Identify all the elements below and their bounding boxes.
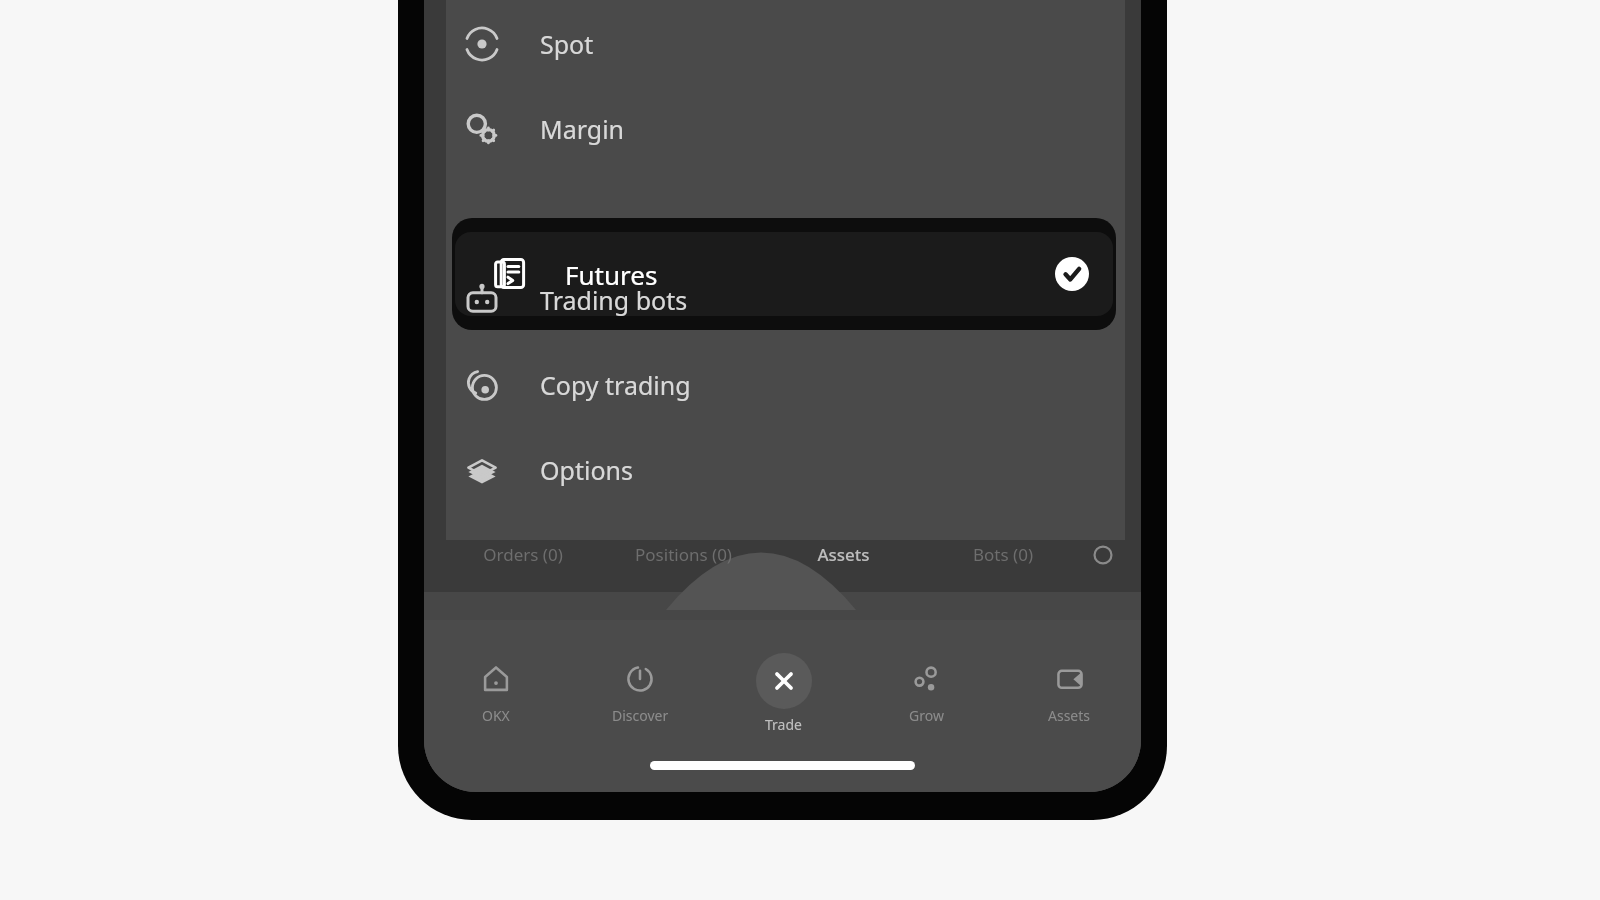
- staticText: OKX: [482, 706, 510, 725]
- staticText: Assets: [817, 543, 870, 566]
- staticText: Bots (0): [973, 543, 1033, 566]
- button[interactable]: Discover: [568, 638, 712, 748]
- staticText: Positions (0): [635, 543, 732, 566]
- button[interactable]: Close trade menu: [712, 638, 855, 748]
- staticText: Spot: [540, 27, 594, 61]
- staticText: Grow: [909, 706, 944, 725]
- staticText: Trading bots: [540, 283, 688, 317]
- button[interactable]: Copy trading: [424, 355, 1141, 415]
- staticText: Options: [540, 453, 633, 487]
- staticText: Discover: [612, 706, 669, 725]
- button[interactable]: Trading bots: [424, 270, 1141, 330]
- button[interactable]: Grow: [855, 638, 998, 748]
- staticText: Futures: [565, 257, 1055, 292]
- staticText: Margin: [540, 112, 625, 146]
- button[interactable]: Assets: [998, 638, 1141, 748]
- button[interactable]: Futures: [455, 232, 1113, 316]
- button[interactable]: Margin: [424, 99, 1141, 159]
- staticText: Assets: [1048, 706, 1091, 725]
- staticText: Orders (0): [483, 543, 563, 566]
- button[interactable]: Options: [424, 440, 1141, 500]
- staticText: Trade: [765, 715, 802, 734]
- button[interactable]: OKX: [424, 638, 568, 748]
- staticText: Copy trading: [540, 368, 691, 402]
- button[interactable]: Spot: [424, 14, 1141, 74]
